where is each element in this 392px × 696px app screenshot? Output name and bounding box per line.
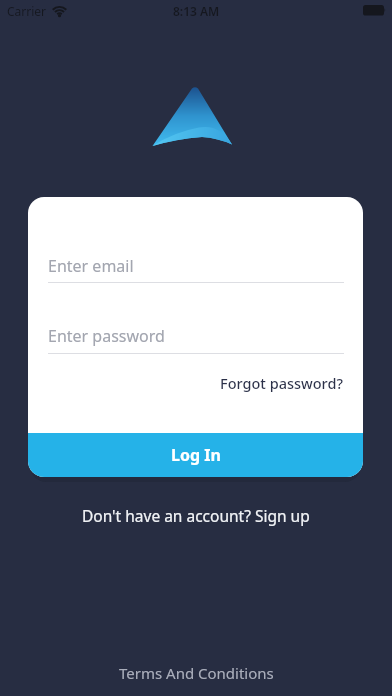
button[interactable]: Enter email <box>48 249 344 283</box>
staticText: Enter email <box>48 255 134 277</box>
button[interactable]: Log In <box>28 433 363 477</box>
staticText: Terms And Conditions <box>119 663 274 683</box>
button[interactable]: Terms And Conditions <box>0 663 392 683</box>
staticText: Log In <box>171 444 221 466</box>
staticText: Forgot password? <box>220 373 343 393</box>
button[interactable]: Don't have an account? Sign up <box>0 505 392 526</box>
button[interactable]: Enter password <box>48 319 344 354</box>
staticText: Enter password <box>48 325 165 347</box>
staticText: Carrier <box>7 3 47 19</box>
staticText: 8:13 AM <box>173 3 220 19</box>
staticText: Don't have an account? Sign up <box>82 505 310 526</box>
button[interactable]: Forgot password? <box>28 373 343 393</box>
